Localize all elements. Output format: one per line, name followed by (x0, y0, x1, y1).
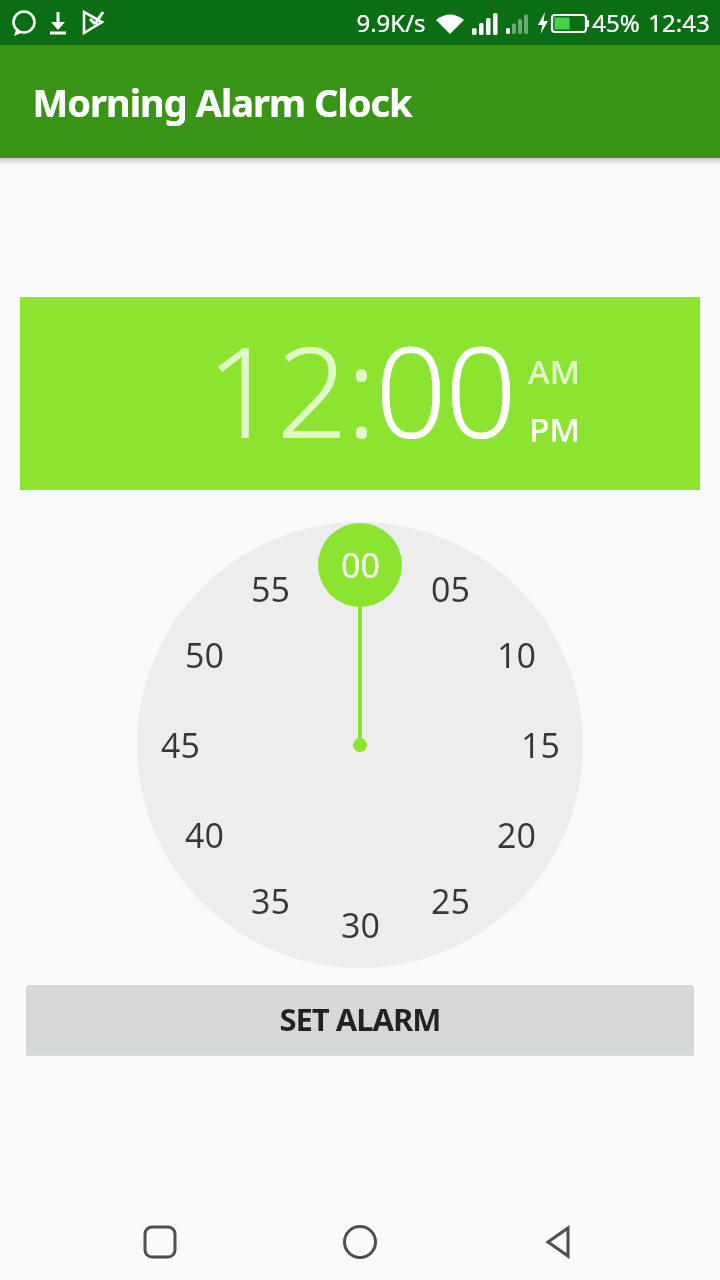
staticText: 25 (431, 878, 470, 924)
staticText: 00 (375, 303, 515, 475)
button[interactable]: 10 (476, 630, 556, 680)
button[interactable]: 50 (164, 630, 244, 680)
staticText: 50 (185, 632, 224, 678)
button[interactable]: 20 (476, 810, 556, 860)
button[interactable]: 30 (320, 900, 400, 950)
button[interactable]: 12: (20, 297, 700, 490)
staticText: 30 (341, 902, 380, 948)
staticText: 20 (497, 812, 536, 858)
button[interactable]: 05 (410, 564, 490, 614)
staticText: 45% (592, 6, 640, 39)
staticText: 35 (251, 878, 290, 924)
staticText: 40 (185, 812, 224, 858)
button[interactable] (530, 1212, 590, 1272)
staticText: 12: (206, 303, 375, 475)
button[interactable]: 25 (410, 876, 490, 926)
button[interactable]: 15 (500, 720, 580, 770)
staticText: 55 (251, 566, 290, 612)
button[interactable]: AM (528, 349, 580, 394)
button[interactable]: PM (529, 407, 580, 452)
button[interactable] (330, 1212, 390, 1272)
staticText: 12:43 (648, 6, 710, 39)
button[interactable]: 35 (230, 876, 310, 926)
staticText: 05 (431, 566, 470, 612)
button[interactable]: 40 (164, 810, 244, 860)
staticText: 45 (161, 722, 200, 768)
staticText: 9.9K/s (356, 6, 426, 39)
staticText: 00 (341, 542, 380, 588)
staticText: Morning Alarm Clock (32, 76, 412, 128)
button[interactable]: 45 (140, 720, 220, 770)
button[interactable] (130, 1212, 190, 1272)
staticText: 15 (521, 722, 560, 768)
staticText: SET ALARM (279, 998, 441, 1040)
button[interactable]: SET ALARM (26, 985, 694, 1053)
staticText: 10 (497, 632, 536, 678)
button[interactable]: 00 (320, 540, 400, 590)
button[interactable]: 55 (230, 564, 310, 614)
